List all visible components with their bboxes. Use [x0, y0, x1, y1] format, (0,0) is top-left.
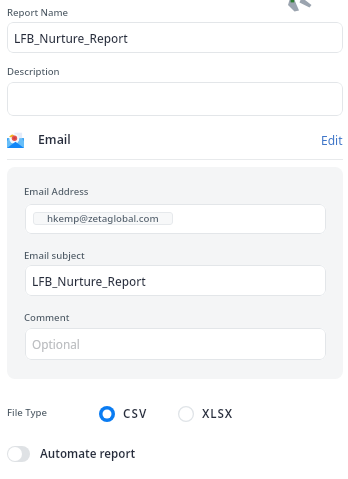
staticText: Email subject	[24, 249, 85, 262]
staticText: XLSX	[202, 406, 234, 422]
button[interactable]: Edit	[319, 128, 345, 152]
staticText: Email	[38, 131, 71, 148]
staticText: LFB_Nurture_Report	[14, 30, 128, 46]
other: Email	[7, 131, 24, 148]
staticText: hkemp@zetaglobal.com	[47, 212, 159, 225]
staticText: Description	[7, 65, 60, 78]
staticText: CSV	[123, 406, 148, 422]
button[interactable]: hkemp@zetaglobal.com	[25, 204, 326, 234]
button[interactable]: Automate report	[7, 446, 136, 462]
button[interactable]: LFB_Nurture_Report	[25, 265, 326, 296]
staticText: LFB_Nurture_Report	[32, 273, 146, 289]
button[interactable]: CSV	[99, 406, 148, 422]
button[interactable]	[7, 82, 343, 116]
button[interactable]: LFB_Nurture_Report	[7, 22, 343, 53]
button[interactable]: Email	[7, 118, 345, 159]
button[interactable]: XLSX	[178, 406, 234, 422]
staticText: Automate report	[40, 446, 136, 462]
staticText: Comment	[24, 311, 70, 324]
button[interactable]: Optional	[25, 328, 326, 360]
staticText: Edit	[321, 132, 343, 148]
staticText: Optional	[32, 336, 80, 352]
staticText: Email Address	[24, 185, 89, 198]
staticText: File Type	[7, 406, 47, 419]
staticText: Report Name	[7, 6, 69, 19]
